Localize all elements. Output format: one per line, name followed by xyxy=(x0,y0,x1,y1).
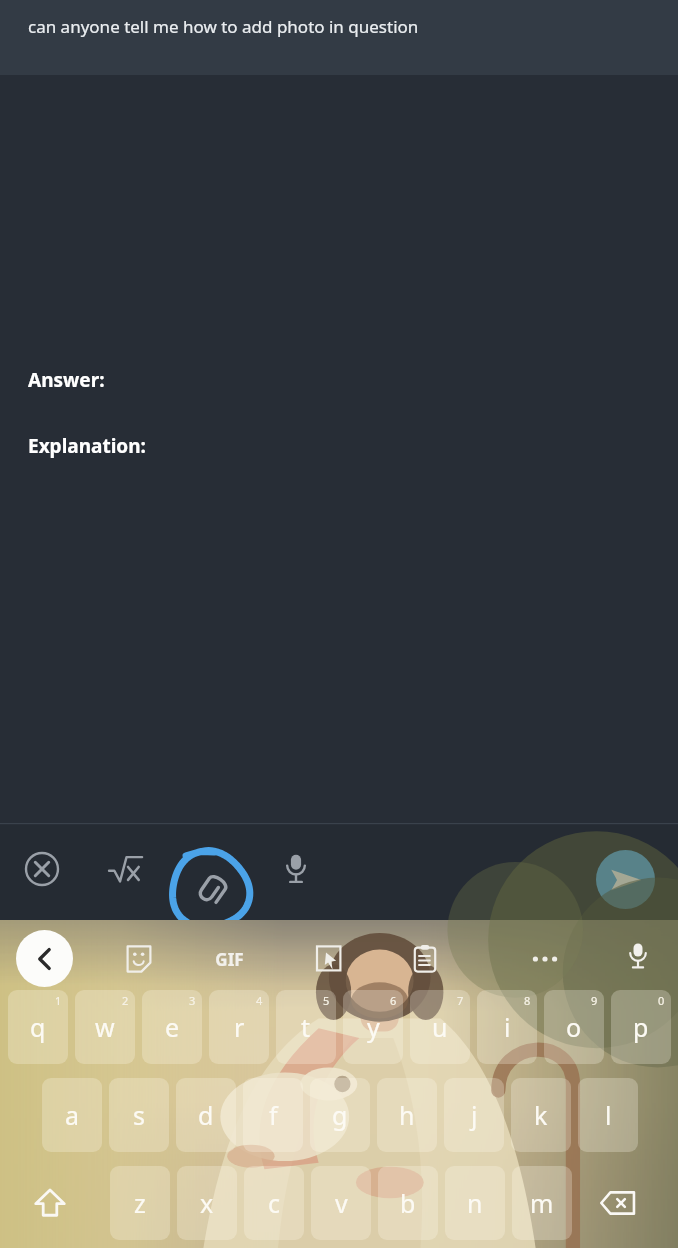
staticText: n xyxy=(467,1186,483,1220)
button[interactable]: Stickers xyxy=(110,930,168,988)
button[interactable]: Voice input xyxy=(272,845,320,893)
button[interactable]: More options xyxy=(516,930,574,988)
staticText: c xyxy=(268,1186,281,1220)
staticText: 1 xyxy=(55,993,62,1008)
staticText: r xyxy=(234,1010,245,1044)
staticText: l xyxy=(605,1098,612,1132)
button[interactable]: s xyxy=(109,1078,169,1152)
staticText: 5 xyxy=(323,993,330,1008)
staticText: p xyxy=(633,1010,649,1044)
staticText: y xyxy=(367,1010,380,1044)
staticText: can anyone tell me how to add photo in q… xyxy=(28,15,419,38)
button[interactable]: e xyxy=(142,990,202,1064)
staticText: z xyxy=(134,1186,146,1220)
button[interactable]: Voice typing xyxy=(612,930,664,982)
staticText: e xyxy=(165,1010,180,1044)
staticText: u xyxy=(432,1010,448,1044)
button[interactable]: n xyxy=(445,1166,505,1240)
button[interactable]: Math xyxy=(100,845,150,895)
button[interactable]: a xyxy=(42,1078,102,1152)
button[interactable]: d xyxy=(176,1078,236,1152)
staticText: 2 xyxy=(122,993,129,1008)
staticText: o xyxy=(566,1010,582,1044)
staticText: 0 xyxy=(658,993,665,1008)
staticText: GIF xyxy=(215,948,244,971)
button[interactable]: x xyxy=(177,1166,237,1240)
staticText: i xyxy=(504,1010,511,1044)
button[interactable]: Back xyxy=(16,930,73,987)
button[interactable]: g xyxy=(310,1078,370,1152)
staticText: 6 xyxy=(390,993,397,1008)
button[interactable]: b xyxy=(378,1166,438,1240)
button[interactable]: Attach photo xyxy=(168,847,252,931)
button[interactable]: k xyxy=(511,1078,571,1152)
staticText: 9 xyxy=(591,993,598,1008)
button[interactable]: q xyxy=(8,990,68,1064)
button[interactable]: c xyxy=(244,1166,304,1240)
staticText: v xyxy=(335,1186,348,1220)
button[interactable]: u xyxy=(410,990,470,1064)
staticText: a xyxy=(65,1098,80,1132)
button[interactable]: GIF xyxy=(200,930,258,988)
button[interactable]: w xyxy=(75,990,135,1064)
staticText: s xyxy=(133,1098,145,1132)
staticText: q xyxy=(30,1010,46,1044)
staticText: m xyxy=(530,1186,554,1220)
button[interactable]: h xyxy=(377,1078,437,1152)
staticText: w xyxy=(95,1010,115,1044)
staticText: Explanation: xyxy=(28,433,146,459)
staticText: x xyxy=(200,1186,214,1220)
staticText: 3 xyxy=(189,993,196,1008)
staticText: g xyxy=(332,1098,348,1132)
button[interactable]: Send xyxy=(596,850,655,909)
button[interactable]: t xyxy=(276,990,336,1064)
button[interactable]: o xyxy=(544,990,604,1064)
staticText: t xyxy=(301,1010,311,1044)
staticText: h xyxy=(399,1098,415,1132)
staticText: 4 xyxy=(256,993,263,1008)
button[interactable]: l xyxy=(578,1078,638,1152)
staticText: 8 xyxy=(524,993,531,1008)
button[interactable]: f xyxy=(243,1078,303,1152)
staticText: f xyxy=(269,1098,278,1132)
staticText: 7 xyxy=(457,993,464,1008)
staticText: d xyxy=(198,1098,214,1132)
button[interactable]: Clear xyxy=(18,845,66,893)
button[interactable]: y xyxy=(343,990,403,1064)
button[interactable]: v xyxy=(311,1166,371,1240)
button[interactable]: r xyxy=(209,990,269,1064)
button[interactable]: Clipboard xyxy=(396,930,454,988)
button[interactable]: i xyxy=(477,990,537,1064)
button[interactable]: z xyxy=(110,1166,170,1240)
button[interactable]: Backspace xyxy=(586,1166,650,1240)
staticText: j xyxy=(471,1098,478,1132)
button[interactable]: Text sticker xyxy=(300,930,358,988)
button[interactable]: Shift xyxy=(22,1166,78,1240)
staticText: Answer: xyxy=(28,367,105,393)
button[interactable]: j xyxy=(444,1078,504,1152)
staticText: b xyxy=(400,1186,416,1220)
staticText: k xyxy=(534,1098,548,1132)
button[interactable]: p xyxy=(611,990,671,1064)
button[interactable]: m xyxy=(512,1166,572,1240)
